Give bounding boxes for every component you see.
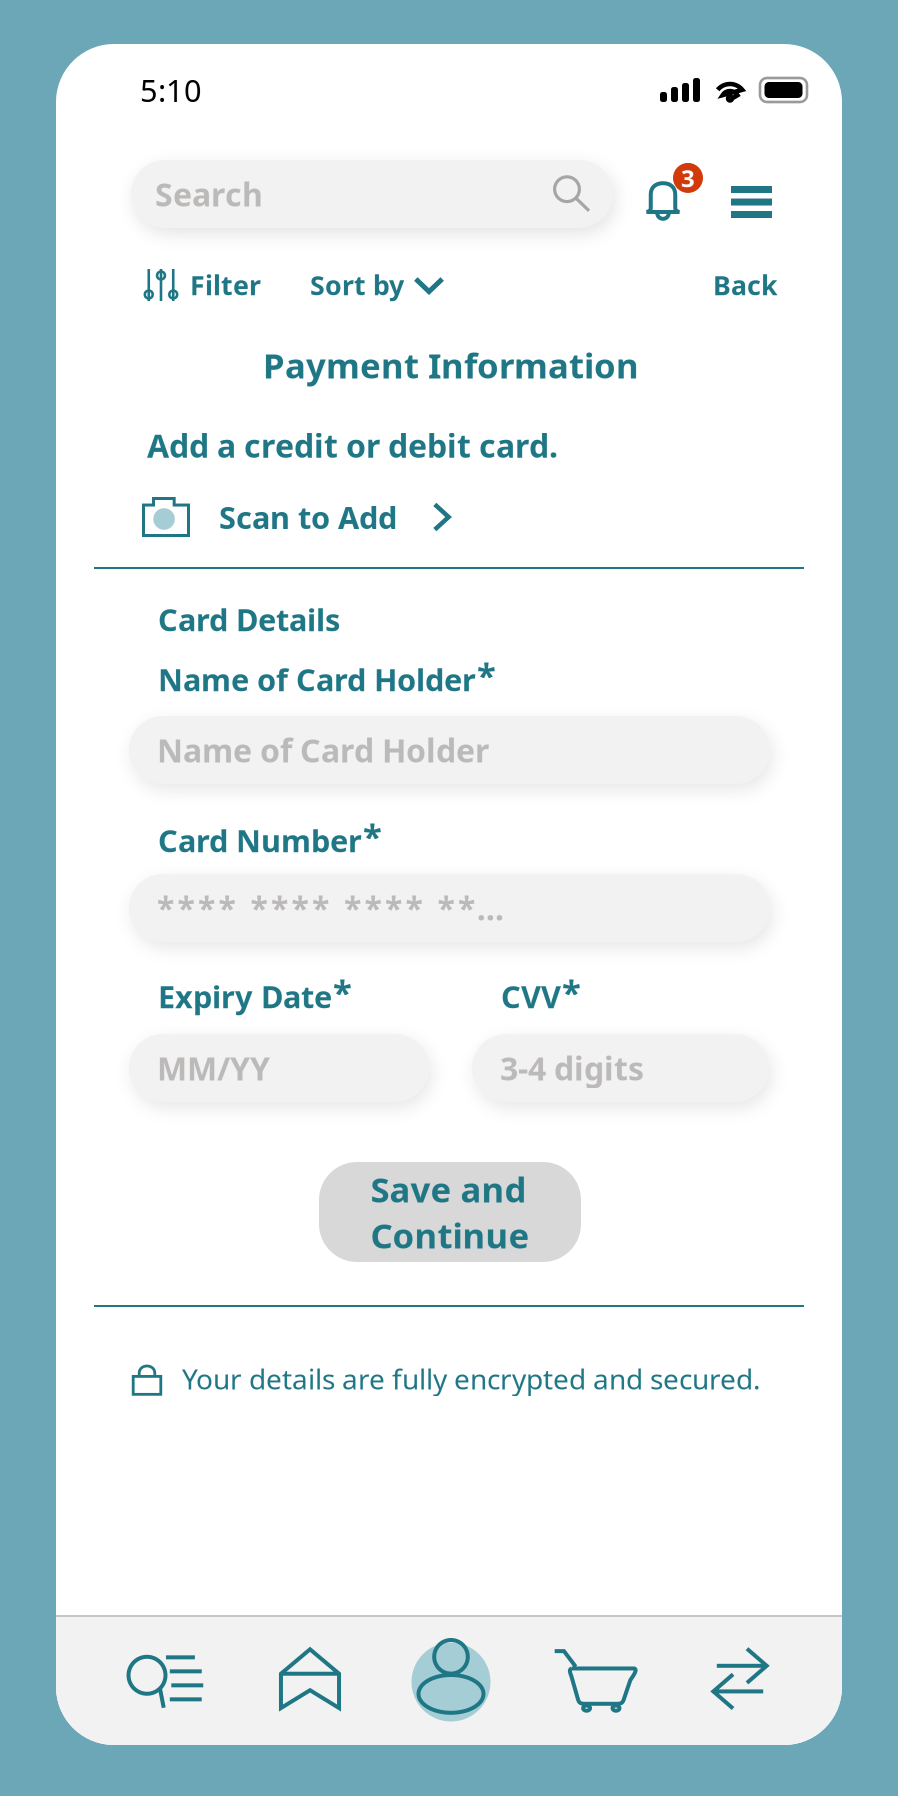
staticText: Save and Continue (370, 1166, 529, 1258)
staticText: 3 (681, 162, 695, 194)
button[interactable]: Scan to Add (142, 494, 457, 540)
staticText: Name of Card Holder (157, 729, 489, 771)
staticText: Search (155, 173, 263, 215)
staticText: * (363, 813, 382, 859)
button[interactable]: Notifications (647, 149, 713, 221)
button[interactable]: Transfers (691, 1633, 789, 1731)
staticText: Filter (190, 267, 261, 303)
staticText: Card Number (158, 820, 362, 861)
button[interactable]: Sort by (310, 262, 444, 308)
button[interactable]: Search (117, 1633, 215, 1731)
staticText: Card Details (158, 599, 340, 640)
staticText: * (477, 652, 496, 698)
staticText: **** **** **** **** (157, 887, 512, 929)
staticText: * (333, 969, 352, 1015)
staticText: Sort by (310, 267, 404, 303)
staticText: Expiry Date (158, 976, 332, 1017)
staticText: Name of Card Holder (158, 659, 476, 700)
button[interactable]: Cart (546, 1633, 644, 1731)
staticText: Payment Information (263, 342, 639, 388)
staticText: Scan to Add (219, 497, 397, 537)
staticText: 3-4 digits (500, 1047, 644, 1089)
button[interactable]: Filter (144, 262, 261, 308)
staticText: * (562, 969, 581, 1015)
staticText: Your details are fully encrypted and sec… (182, 1360, 761, 1397)
staticText: 5:10 (140, 70, 202, 110)
staticText: Back (713, 267, 778, 303)
button[interactable]: Home (261, 1633, 359, 1731)
staticText: CVV (501, 976, 561, 1017)
button[interactable]: Save and Continue (319, 1162, 581, 1262)
button[interactable]: Back (713, 262, 778, 308)
staticText: MM/YY (157, 1047, 270, 1089)
button[interactable]: Profile (402, 1633, 500, 1731)
staticText: Add a credit or debit card. (147, 424, 558, 466)
button[interactable]: Menu (721, 176, 782, 231)
